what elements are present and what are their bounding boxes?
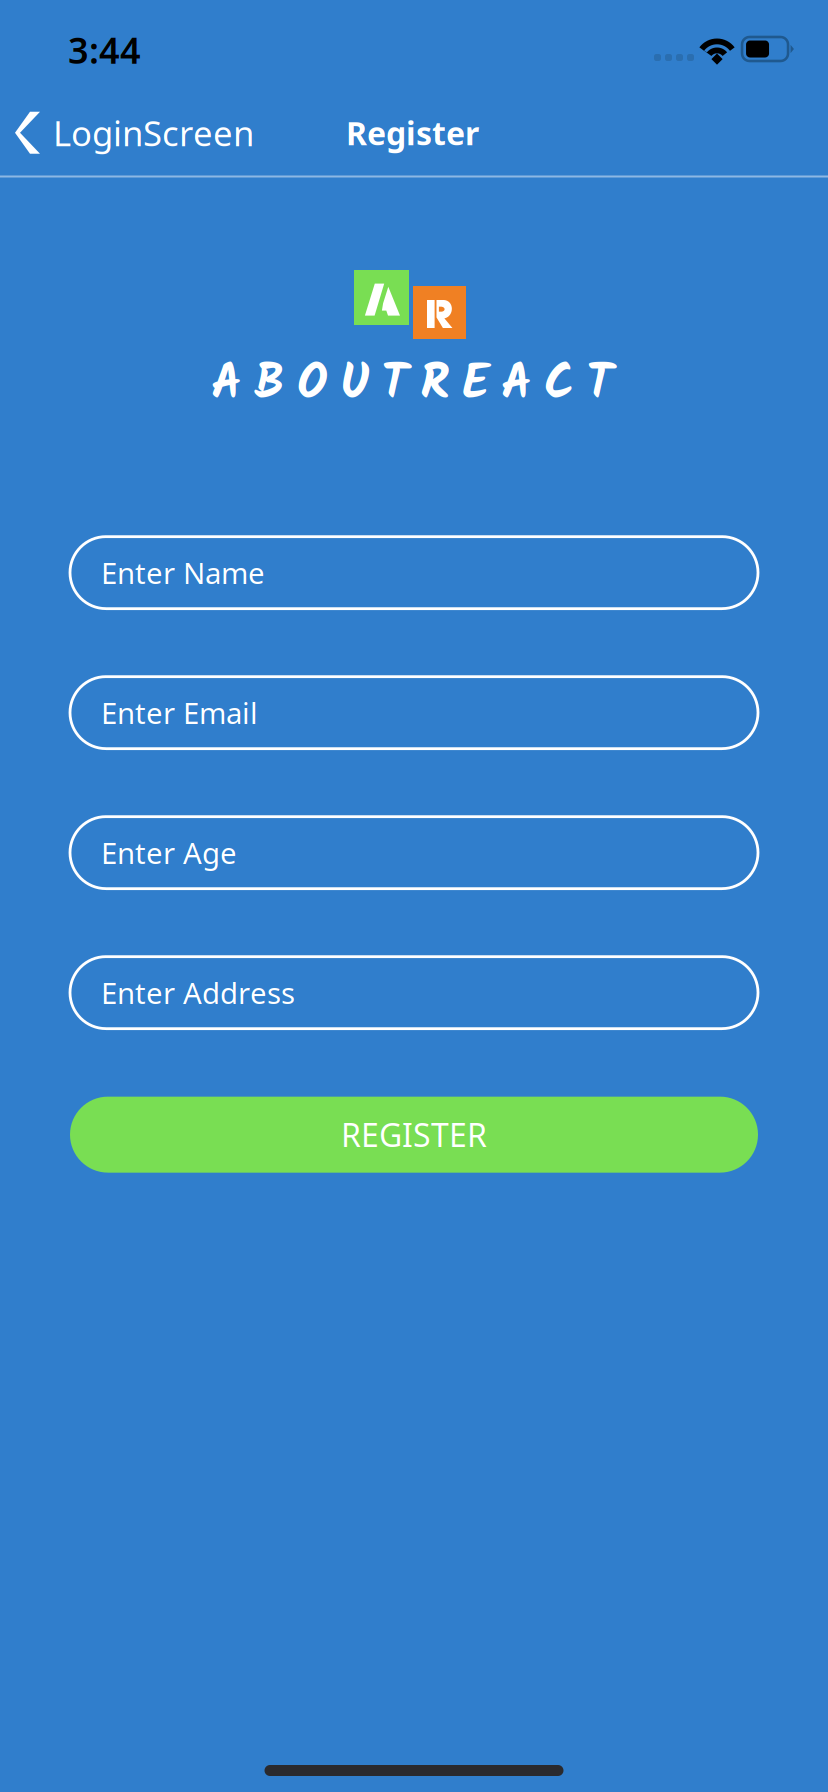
staticText: Enter Address [101,973,295,1012]
staticText: Register [346,111,479,154]
button[interactable]: Enter Email [70,677,758,749]
staticText: C [544,346,574,425]
button[interactable]: Enter Name [70,537,758,609]
staticText: T [586,346,613,425]
staticText: T [381,346,408,425]
staticText: Enter Email [101,693,258,732]
staticText: O [297,346,328,425]
button[interactable]: Enter Age [70,817,758,889]
button[interactable]: Enter Address [70,957,758,1029]
staticText: REGISTER [341,1113,487,1156]
staticText: A [211,346,242,425]
staticText: A [501,346,532,425]
staticText: E [462,346,489,425]
staticText: 3:44 [68,26,141,74]
button[interactable]: LoginScreen [0,89,266,177]
button[interactable]: REGISTER [70,1097,758,1173]
staticText: U [340,346,369,425]
staticText: B [254,346,285,425]
staticText: Enter Name [101,553,265,592]
staticText: LoginScreen [53,110,254,156]
staticText: Enter Age [101,833,237,872]
staticText: R [420,346,450,425]
